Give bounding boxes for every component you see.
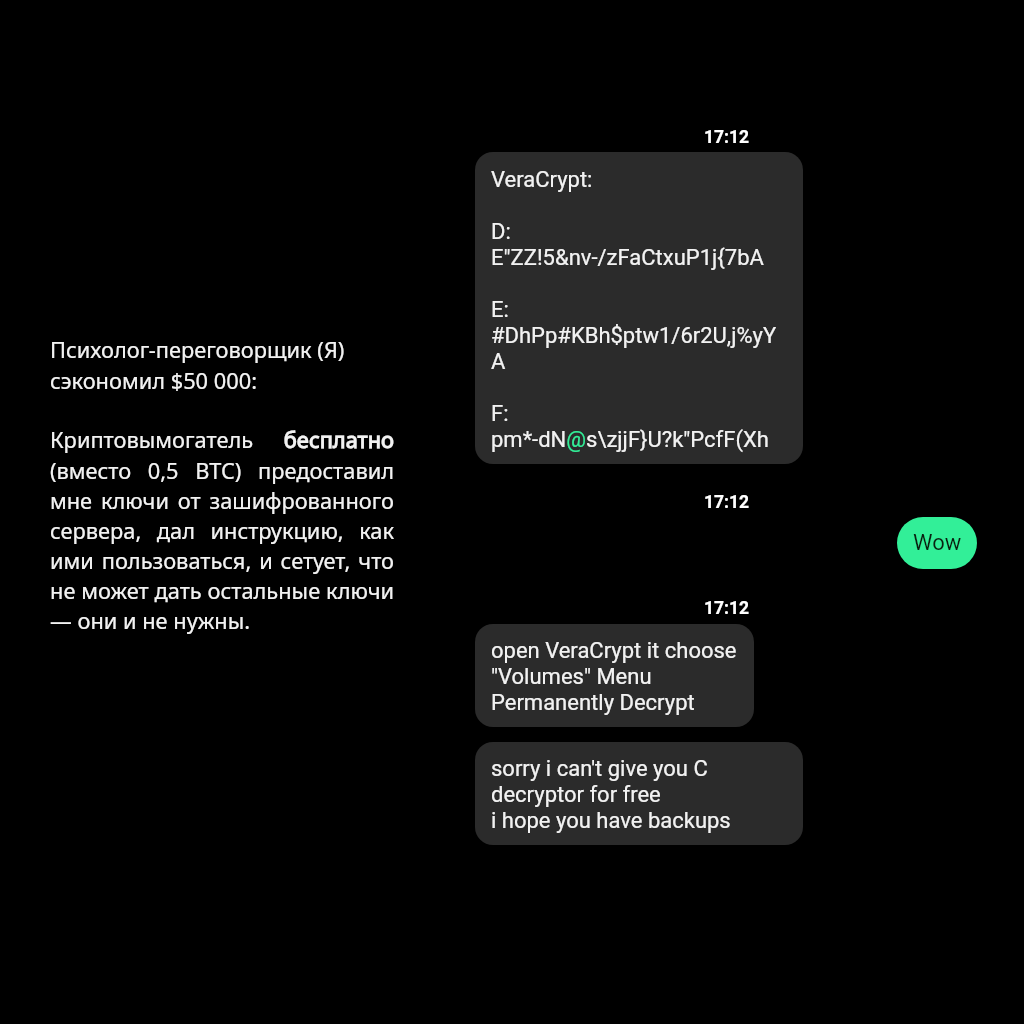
- staticText: Криптовымогатель бесплатно (вместо 0,5 B…: [50, 425, 394, 635]
- button[interactable]: Wow: [897, 517, 977, 569]
- other: Sent at 17:12: [687, 492, 767, 513]
- staticText: Психолог-переговорщик (Я) сэкономил $50 …: [50, 335, 345, 395]
- button[interactable]: VeraCrypt: D: E"ZZ!5&nv-/zFaCtxuP1j{7bA …: [475, 152, 803, 464]
- staticText: 17:12: [704, 598, 750, 619]
- button[interactable]: sorry i can't give you C decryptor for f…: [475, 742, 803, 845]
- staticText: open VeraCrypt it choose "Volumes" Menu …: [491, 638, 737, 716]
- staticText: Wow: [913, 530, 962, 556]
- staticText: 17:12: [704, 127, 750, 148]
- staticText: VeraCrypt: D: E"ZZ!5&nv-/zFaCtxuP1j{7bA …: [491, 167, 788, 453]
- staticText: 17:12: [704, 492, 750, 513]
- other: Sent at 17:12: [687, 127, 767, 148]
- button[interactable]: open VeraCrypt it choose "Volumes" Menu …: [475, 624, 754, 727]
- other: Sent at 17:12: [687, 598, 767, 619]
- staticText: sorry i can't give you C decryptor for f…: [491, 756, 731, 834]
